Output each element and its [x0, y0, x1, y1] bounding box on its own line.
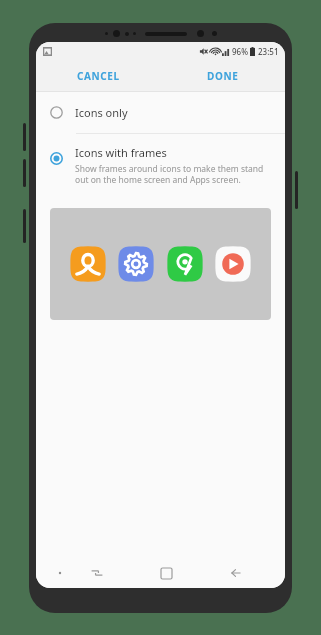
button[interactable]: Back	[201, 558, 271, 588]
button[interactable]: App icon	[70, 246, 106, 282]
button[interactable]: Home	[131, 558, 201, 588]
staticText: DONE	[207, 69, 239, 83]
button[interactable]: App icon	[118, 246, 154, 282]
button[interactable]: Recents	[62, 558, 131, 588]
button[interactable]: App icon	[167, 246, 203, 282]
button[interactable]: DONE	[160, 60, 285, 91]
button[interactable]: Icons only	[36, 92, 285, 133]
staticText: Icons with frames	[75, 145, 167, 160]
staticText: CANCEL	[77, 69, 120, 83]
button[interactable]: Icons with frames	[36, 134, 285, 197]
staticText: Icons only	[75, 105, 128, 120]
button[interactable]: CANCEL	[36, 60, 160, 91]
button[interactable]: App icon	[215, 246, 251, 282]
staticText: 96%	[232, 46, 248, 57]
staticText: Show frames around icons to make them st…	[75, 163, 264, 185]
staticText: 23:51	[258, 46, 279, 57]
